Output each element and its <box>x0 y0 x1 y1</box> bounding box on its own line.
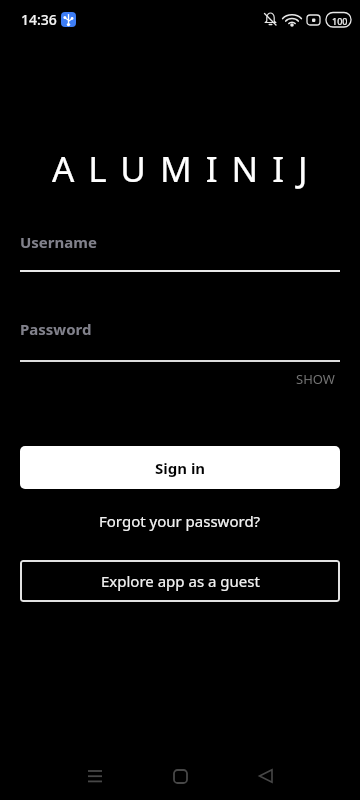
button[interactable]: Sign in <box>20 446 340 489</box>
button[interactable]: Forgot your password? <box>93 505 267 537</box>
staticText: Sign in <box>155 458 206 478</box>
button[interactable]: Username <box>20 228 340 272</box>
button[interactable]: Explore app as a guest <box>20 560 340 602</box>
staticText: Explore app as a guest <box>101 571 260 591</box>
button[interactable] <box>67 752 123 800</box>
staticText: SHOW <box>296 370 335 388</box>
staticText: Password <box>20 319 92 339</box>
staticText: Forgot your password? <box>99 511 261 531</box>
button[interactable] <box>152 752 208 800</box>
button[interactable]: Password <box>20 315 340 362</box>
staticText: ALUMINIJ <box>52 145 322 193</box>
button[interactable] <box>237 752 293 800</box>
button[interactable]: SHOW <box>292 366 339 392</box>
staticText: 14:36 <box>21 10 57 29</box>
staticText: Username <box>20 232 97 252</box>
staticText: 100 <box>332 15 348 27</box>
